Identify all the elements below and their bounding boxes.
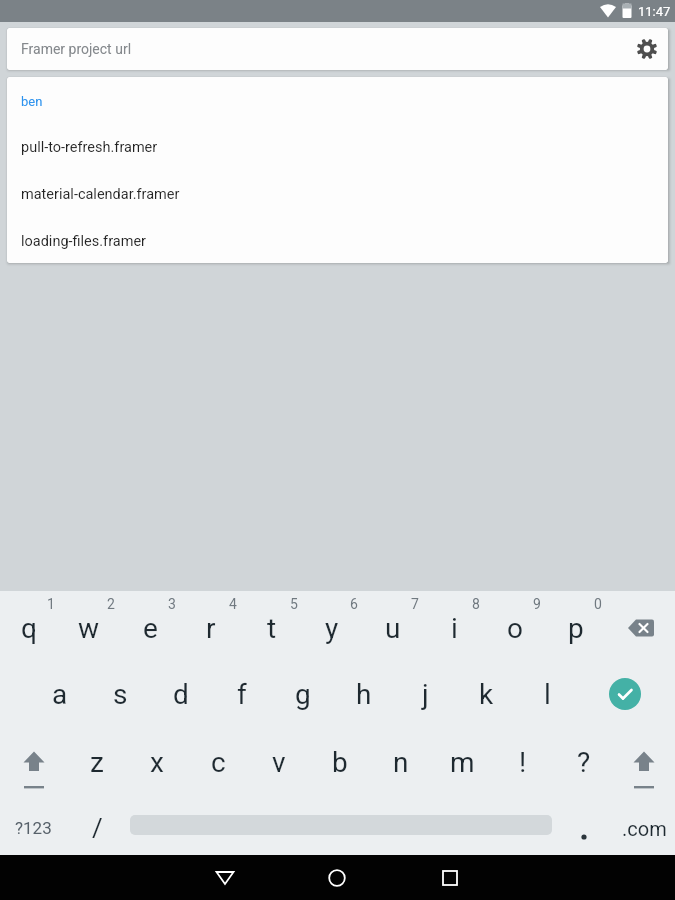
- button[interactable]: x: [129, 734, 185, 790]
- staticText: o: [507, 612, 523, 645]
- button[interactable]: f: [214, 666, 270, 722]
- button[interactable]: b: [312, 734, 368, 790]
- button[interactable]: c: [190, 734, 246, 790]
- staticText: .com: [622, 817, 667, 840]
- button[interactable]: j: [397, 666, 453, 722]
- staticText: ?123: [15, 818, 52, 838]
- staticText: m: [450, 746, 475, 779]
- staticText: r: [206, 612, 216, 645]
- button[interactable]: [6, 734, 62, 790]
- staticText: y: [325, 612, 339, 645]
- button[interactable]: q: [1, 600, 57, 656]
- staticText: g: [295, 678, 311, 711]
- button[interactable]: loading-files.framer: [7, 218, 668, 263]
- button[interactable]: u: [365, 600, 421, 656]
- button[interactable]: ?: [556, 734, 612, 790]
- button[interactable]: g: [275, 666, 331, 722]
- staticText: 2: [107, 596, 115, 612]
- button[interactable]: v: [251, 734, 307, 790]
- staticText: k: [479, 678, 494, 711]
- staticText: x: [150, 746, 164, 779]
- button[interactable]: !: [495, 734, 551, 790]
- button[interactable]: m: [434, 734, 490, 790]
- staticText: 6: [350, 596, 358, 612]
- staticText: n: [393, 746, 409, 779]
- button[interactable]: Framer project url: [7, 28, 668, 70]
- button[interactable]: r: [183, 600, 239, 656]
- button[interactable]: k: [458, 666, 514, 722]
- staticText: pull-to-refresh.framer: [21, 139, 158, 156]
- button[interactable]: z: [69, 734, 125, 790]
- button[interactable]: ?123: [5, 800, 61, 856]
- staticText: /: [92, 813, 103, 843]
- button[interactable]: i: [426, 600, 482, 656]
- button[interactable]: .com: [616, 800, 672, 856]
- staticText: v: [272, 746, 286, 779]
- staticText: 8: [472, 596, 480, 612]
- staticText: z: [90, 746, 104, 779]
- button[interactable]: [609, 678, 641, 710]
- staticText: 7: [411, 596, 419, 612]
- staticText: ?: [577, 746, 591, 779]
- button[interactable]: l: [519, 666, 575, 722]
- button[interactable]: /: [69, 800, 125, 856]
- button[interactable]: e: [122, 600, 178, 656]
- button[interactable]: y: [304, 600, 360, 656]
- button[interactable]: s: [92, 666, 148, 722]
- button[interactable]: ben: [7, 87, 668, 115]
- staticText: loading-files.framer: [21, 233, 146, 250]
- staticText: f: [237, 678, 247, 711]
- button[interactable]: h: [336, 666, 392, 722]
- button[interactable]: pull-to-refresh.framer: [7, 124, 668, 170]
- staticText: 11:47: [638, 4, 671, 19]
- staticText: b: [332, 746, 348, 779]
- staticText: c: [211, 746, 226, 779]
- button[interactable]: t: [244, 600, 300, 656]
- staticText: t: [267, 612, 277, 645]
- staticText: ben: [21, 94, 43, 109]
- staticText: w: [78, 612, 100, 645]
- staticText: 4: [229, 596, 237, 612]
- staticText: material-calendar.framer: [21, 186, 180, 203]
- staticText: d: [173, 678, 189, 711]
- button[interactable]: w: [61, 600, 117, 656]
- staticText: Framer project url: [21, 41, 132, 57]
- button[interactable]: d: [153, 666, 209, 722]
- button[interactable]: [613, 600, 669, 656]
- staticText: q: [21, 612, 37, 645]
- button[interactable]: p: [548, 600, 604, 656]
- button[interactable]: [315, 855, 359, 900]
- staticText: 1: [47, 596, 55, 612]
- staticText: 3: [168, 596, 176, 612]
- button[interactable]: [428, 855, 472, 900]
- staticText: !: [519, 746, 527, 779]
- button[interactable]: [635, 37, 659, 61]
- staticText: u: [385, 612, 401, 645]
- staticText: 9: [533, 596, 541, 612]
- staticText: l: [544, 678, 551, 711]
- staticText: h: [356, 678, 372, 711]
- staticText: p: [568, 612, 584, 645]
- staticText: j: [422, 678, 429, 711]
- button[interactable]: n: [373, 734, 429, 790]
- staticText: 0: [594, 596, 602, 612]
- button[interactable]: a: [32, 666, 88, 722]
- staticText: i: [451, 612, 458, 645]
- button[interactable]: material-calendar.framer: [7, 171, 668, 217]
- staticText: a: [52, 678, 68, 711]
- staticText: e: [143, 612, 158, 645]
- staticText: 5: [290, 596, 298, 612]
- button[interactable]: [203, 855, 247, 900]
- button[interactable]: o: [487, 600, 543, 656]
- staticText: s: [113, 678, 128, 711]
- button[interactable]: [616, 734, 672, 790]
